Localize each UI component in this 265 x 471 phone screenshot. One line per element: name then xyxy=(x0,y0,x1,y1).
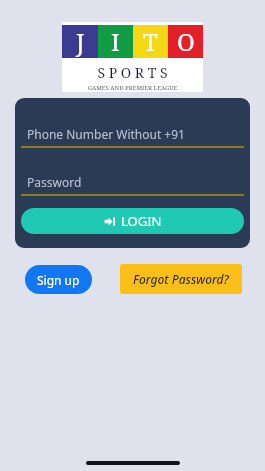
button[interactable]: Password xyxy=(21,174,244,196)
button[interactable]: Phone Number Without +91 xyxy=(21,126,244,148)
staticText: LOGIN xyxy=(121,212,162,230)
staticText: J xyxy=(76,25,85,58)
staticText: Forgot Password? xyxy=(133,271,229,287)
staticText: Sign up xyxy=(37,272,80,288)
staticText: Password xyxy=(27,174,82,190)
button[interactable]: Sign up xyxy=(25,265,92,294)
staticText: GAMES AND PREMIER LEAGUE xyxy=(62,84,203,92)
button[interactable]: LOGIN xyxy=(21,208,244,234)
staticText: I xyxy=(111,25,120,58)
staticText: T xyxy=(143,25,158,58)
staticText: O xyxy=(177,25,195,58)
staticText: S P O R T S xyxy=(62,63,203,82)
staticText: Phone Number Without +91 xyxy=(27,126,185,142)
button[interactable]: Forgot Password? xyxy=(120,264,242,294)
